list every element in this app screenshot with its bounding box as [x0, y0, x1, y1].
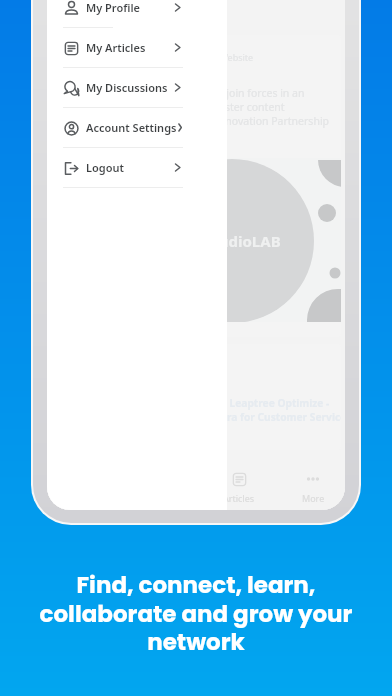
staticText: Articles: [223, 492, 255, 504]
staticText: Find, connect, learn, collaborate and gr…: [0, 569, 392, 658]
staticText: Logout: [86, 160, 124, 175]
button[interactable]: My Profile: [63, 0, 183, 28]
button[interactable]: More: [283, 458, 343, 510]
button[interactable]: My Articles: [63, 28, 183, 68]
staticText: My Discussions: [86, 80, 168, 95]
staticText: Adobe + Leaptree Optimize - A New Era fo…: [186, 396, 341, 424]
button[interactable]: Account Settings: [63, 108, 183, 148]
staticText: StudioLAB: [204, 231, 281, 251]
button[interactable]: My Discussions: [63, 68, 183, 108]
staticText: My Profile: [86, 0, 140, 15]
button[interactable]: Logout: [63, 148, 183, 188]
button[interactable]: Articles: [209, 458, 269, 510]
staticText: Two industry leaders join forces in an e…: [121, 86, 330, 128]
staticText: Adobe Blog · Webinar Website: [121, 51, 254, 63]
staticText: More: [302, 492, 325, 504]
staticText: Account Settings: [86, 120, 177, 135]
staticText: My Articles: [86, 40, 146, 55]
